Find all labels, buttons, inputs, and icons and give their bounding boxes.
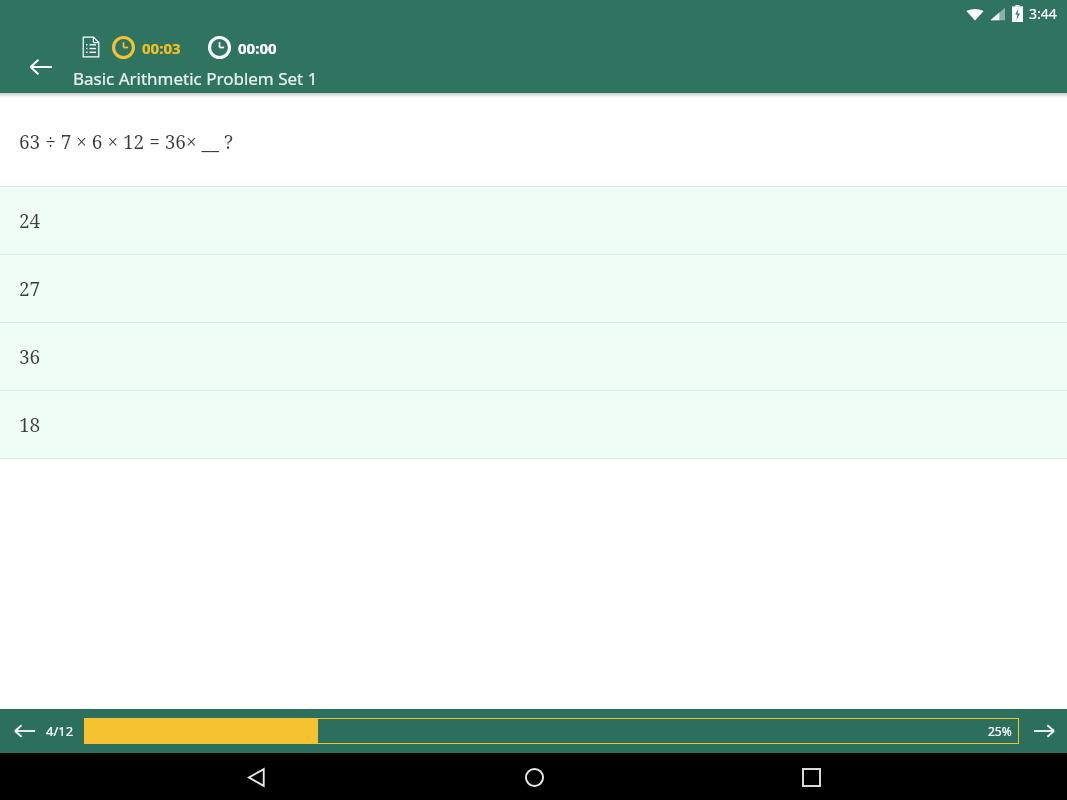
- staticText: 27: [19, 276, 41, 302]
- staticText: 63 ÷ 7 × 6 × 12 = 36× __ ?: [19, 129, 233, 155]
- staticText: 24: [19, 208, 41, 234]
- button[interactable]: 36: [0, 323, 1067, 390]
- button[interactable]: Problem set info: [76, 32, 106, 62]
- staticText: 3:44: [1029, 4, 1057, 23]
- staticText: 18: [19, 412, 41, 438]
- button[interactable]: 00:03: [111, 36, 182, 59]
- button[interactable]: 00:00: [207, 36, 278, 59]
- button[interactable]: Recent apps: [789, 755, 833, 799]
- staticText: 00:03: [142, 38, 181, 58]
- staticText: 36: [19, 344, 41, 370]
- button[interactable]: Back: [234, 755, 278, 799]
- button[interactable]: Back: [17, 43, 65, 91]
- staticText: 25%: [988, 723, 1012, 739]
- button[interactable]: 24: [0, 187, 1067, 254]
- staticText: Basic Arithmetic Problem Set 1: [73, 67, 318, 90]
- button[interactable]: 27: [0, 255, 1067, 322]
- button[interactable]: 18: [0, 391, 1067, 458]
- staticText: 00:00: [238, 38, 277, 58]
- button[interactable]: Home: [512, 755, 556, 799]
- staticText: 4/12: [46, 722, 74, 740]
- button[interactable]: Previous question: [6, 712, 44, 750]
- button[interactable]: Next question: [1025, 712, 1063, 750]
